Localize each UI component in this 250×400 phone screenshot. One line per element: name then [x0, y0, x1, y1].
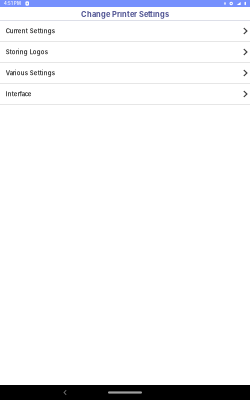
staticText: Current Settings: [6, 27, 55, 35]
button[interactable]: Current Settings: [0, 21, 250, 42]
staticText: Storing Logos: [6, 48, 48, 56]
button[interactable]: Various Settings: [0, 63, 250, 84]
staticText: Change Printer Settings: [81, 10, 169, 19]
button[interactable]: Interface: [0, 84, 250, 105]
button[interactable]: Back: [61, 387, 69, 398]
button[interactable]: Home: [104, 387, 146, 398]
button[interactable]: Storing Logos: [0, 42, 250, 63]
staticText: Various Settings: [6, 69, 55, 77]
staticText: Interface: [6, 90, 32, 98]
staticText: 4:51 PM: [4, 1, 21, 6]
